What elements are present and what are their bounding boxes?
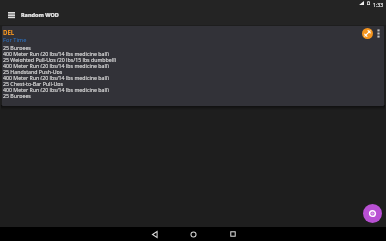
staticText: 400 Meter Run (20 lbs/14 lbs medicine ba… xyxy=(3,74,109,80)
staticText: 400 Meter Run (20 lbs/14 lbs medicine ba… xyxy=(3,50,109,56)
staticText: 25 Handstand Push-Ups xyxy=(3,68,63,74)
button[interactable]: More options xyxy=(373,26,384,40)
staticText: 25 Weighted Pull-Ups (20 lbs/15 lbs dumb… xyxy=(3,56,117,62)
button[interactable]: Recent apps xyxy=(213,227,252,241)
staticText: 400 Meter Run (20 lbs/14 lbs medicine ba… xyxy=(3,86,109,92)
staticText: 25 Chest-to-Bar Pull-Ups xyxy=(3,80,64,86)
staticText: For Time xyxy=(3,36,27,44)
staticText: 1:33 xyxy=(373,1,384,8)
button[interactable]: Generate new workout xyxy=(363,204,382,223)
staticText: DEL xyxy=(3,28,15,36)
staticText: Random WOD xyxy=(21,11,59,18)
button[interactable]: Back xyxy=(135,227,174,241)
button[interactable]: Shuffle workout xyxy=(358,26,377,41)
button[interactable]: DEL xyxy=(2,26,384,106)
staticText: 25 Burpees xyxy=(3,92,31,98)
button[interactable]: Open navigation menu xyxy=(5,8,18,21)
staticText: 25 Burpees xyxy=(3,44,31,50)
button[interactable]: Home xyxy=(174,227,213,241)
staticText: 400 Meter Run (20 lbs/14 lbs medicine ba… xyxy=(3,62,109,68)
